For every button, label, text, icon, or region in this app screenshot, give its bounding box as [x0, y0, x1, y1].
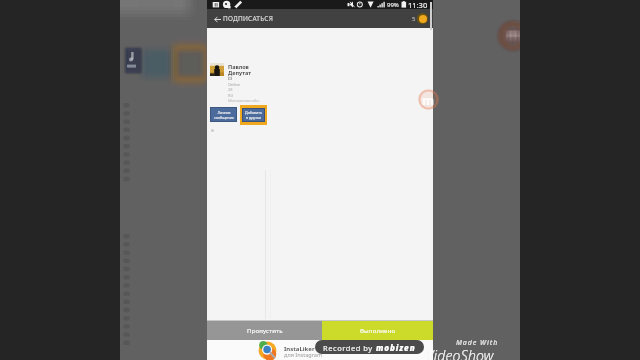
button[interactable]: Пропустить [207, 321, 322, 340]
staticText: Павлов Депутат [228, 63, 251, 77]
button[interactable]: Личное сообщение [211, 108, 236, 121]
button[interactable]: Добавить в друзья [243, 109, 264, 121]
staticText: для Instagram [284, 351, 323, 358]
button[interactable]: Coins [417, 13, 428, 24]
staticText: Online [228, 82, 241, 87]
staticText: Recorded by [323, 343, 376, 353]
staticText: mobizen [376, 342, 416, 353]
staticText: Made With [456, 338, 499, 348]
button[interactable]: Выполнено [322, 321, 433, 340]
staticText: Пропустить [247, 327, 283, 335]
staticText: VideoShow [426, 346, 494, 360]
staticText: m [422, 92, 435, 108]
staticText: Личное сообщение [214, 110, 234, 120]
staticText: ПОДПИСАТЬСЯ [223, 14, 273, 23]
button[interactable]: Back [211, 13, 223, 25]
staticText: InstaLiker - [284, 345, 319, 353]
staticText: 99% [387, 1, 399, 9]
staticText: RU [228, 93, 234, 98]
staticText: 5 [412, 15, 416, 23]
staticText: Выполнено [360, 327, 396, 335]
staticText: 11:30 [408, 0, 428, 9]
button[interactable]: InstaLiker - [207, 340, 433, 360]
staticText: Московская обл. [228, 98, 260, 103]
staticText: Добавить в друзья [245, 110, 262, 120]
staticText: 28 [228, 87, 233, 92]
button[interactable]: Mobizen recorder [418, 89, 439, 110]
